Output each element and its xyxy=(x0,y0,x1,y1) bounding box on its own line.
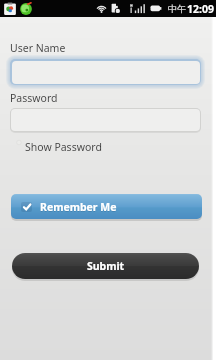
staticText: Remember Me xyxy=(40,200,117,214)
staticText: 12:09 xyxy=(187,2,214,16)
staticText: Password xyxy=(10,91,58,105)
staticText: User Name xyxy=(10,41,66,55)
button[interactable]: Submit xyxy=(12,253,199,279)
staticText: Show Password xyxy=(25,140,102,154)
staticText: Remember Me xyxy=(40,201,117,215)
button[interactable]: Password input xyxy=(10,108,201,132)
button[interactable]: User Name input xyxy=(10,59,201,85)
staticText: 中午 xyxy=(168,3,186,14)
button[interactable]: Remember Me xyxy=(11,194,202,219)
staticText: Submit xyxy=(87,259,125,273)
button[interactable]: Show Password xyxy=(10,138,110,155)
